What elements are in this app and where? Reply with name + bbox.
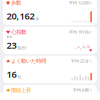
button[interactable]: 階段上昇 [3, 85, 97, 100]
staticText: 心拍数 [11, 29, 26, 35]
staticText: 平均 12,020 [69, 0, 89, 5]
button[interactable]: よく動いた時間 [3, 56, 97, 83]
staticText: 23 [6, 39, 16, 51]
staticText: 平均 8 階 [73, 87, 89, 93]
staticText: 20,162 [6, 10, 34, 22]
staticText: 16 [6, 68, 16, 80]
staticText: 平均 22 分 [71, 58, 89, 64]
staticText: 拍/分 [17, 45, 26, 50]
staticText: 階段上昇 [11, 87, 31, 93]
button[interactable]: 歩数 [3, 0, 97, 25]
staticText: 分 [17, 74, 21, 79]
staticText: 歩 [35, 16, 39, 21]
staticText: 最新 [6, 35, 12, 38]
staticText: よく動いた時間 [11, 58, 46, 64]
button[interactable]: 心拍数 [3, 27, 97, 54]
staticText: 歩数 [11, 0, 21, 6]
staticText: 平均 101 拍 [69, 29, 89, 34]
